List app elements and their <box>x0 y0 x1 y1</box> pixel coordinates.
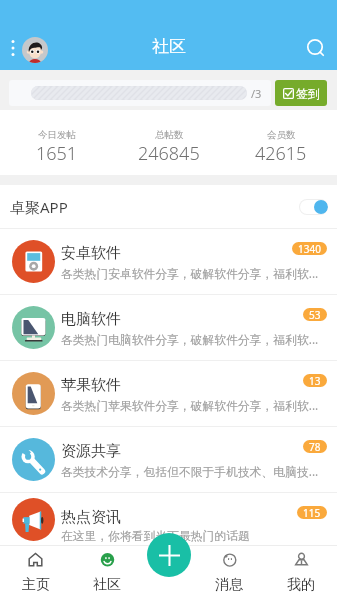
staticText: 热点资讯 <box>61 508 121 527</box>
staticText: 会员数 <box>267 129 296 141</box>
staticText: 246845 <box>138 141 200 166</box>
staticText: 115 <box>303 506 321 519</box>
button[interactable]: 资源共享 <box>0 427 337 492</box>
staticText: 53 <box>309 308 321 321</box>
button[interactable]: 主页 <box>0 546 71 600</box>
staticText: 社区 <box>152 36 186 57</box>
button[interactable]: 卓聚APP <box>0 185 337 228</box>
button[interactable]: 消息 <box>193 546 265 600</box>
button[interactable]: 热点资讯 <box>0 493 337 545</box>
staticText: 卓聚APP <box>10 197 68 217</box>
staticText: 总帖数 <box>155 129 184 141</box>
staticText: 今日发帖 <box>38 129 76 141</box>
button[interactable]: Profile avatar <box>22 37 48 63</box>
staticText: 签到 <box>296 86 320 101</box>
button[interactable]: 苹果软件 <box>0 361 337 426</box>
staticText: 电脑软件 <box>61 310 121 329</box>
staticText: 苹果软件 <box>61 376 121 395</box>
button[interactable]: 安卓软件 <box>0 229 337 294</box>
staticText: 1340 <box>298 242 321 255</box>
staticText: 安卓软件 <box>61 244 121 263</box>
staticText: 78 <box>309 440 321 453</box>
button[interactable]: 社区 <box>71 546 143 600</box>
staticText: 社区 <box>93 576 121 594</box>
button[interactable]: 签到 <box>275 80 327 106</box>
staticText: 1651 <box>36 141 78 166</box>
staticText: 各类热门电脑软件分享，破解软件分享，福利软... <box>61 331 329 347</box>
button[interactable]: 我的 <box>265 546 337 600</box>
staticText: 42615 <box>255 141 307 166</box>
staticText: 消息 <box>215 576 243 594</box>
staticText: 各类热门安卓软件分享，破解软件分享，福利软... <box>61 265 329 281</box>
button[interactable]: Create post <box>147 533 191 577</box>
staticText: 13 <box>309 374 321 387</box>
staticText: 主页 <box>22 576 50 594</box>
button[interactable]: 电脑软件 <box>0 295 337 360</box>
staticText: 在这里，你将看到当下最热门的话题 <box>61 529 329 544</box>
staticText: 各类技术分享，包括但不限于手机技术、电脑技... <box>61 463 329 479</box>
staticText: 我的 <box>287 576 315 594</box>
staticText: /3 <box>251 86 262 101</box>
staticText: 资源共享 <box>61 442 121 461</box>
button[interactable]: Search <box>296 28 334 66</box>
button[interactable]: More options <box>5 33 21 62</box>
staticText: 各类热门苹果软件分享，破解软件分享，福利软... <box>61 397 329 413</box>
